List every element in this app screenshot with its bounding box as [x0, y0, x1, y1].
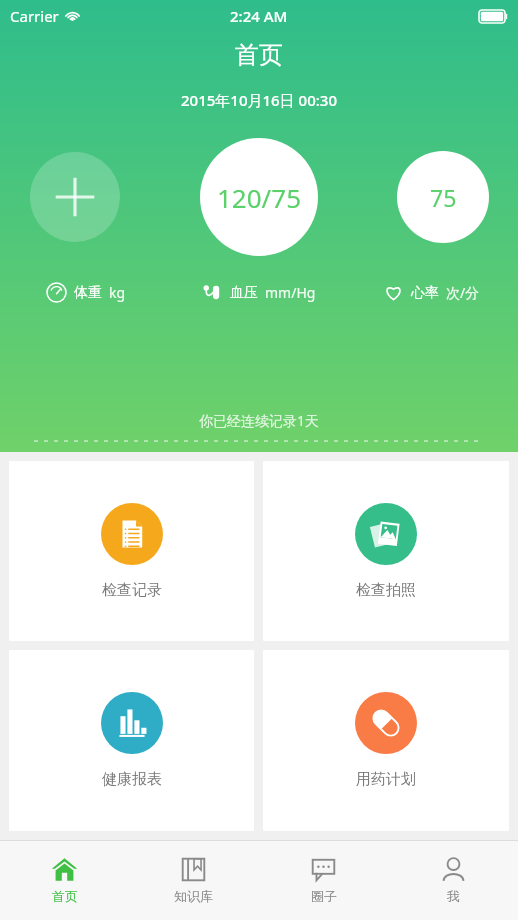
staticText: 知识库: [174, 888, 213, 904]
staticText: 圈子: [311, 888, 337, 904]
button[interactable]: 知识库: [129, 840, 258, 920]
staticText: 2015年10月16日 00:30: [0, 90, 518, 110]
staticText: Carrier: [10, 6, 59, 26]
button[interactable]: 血压: [172, 275, 345, 309]
button[interactable]: 我: [388, 840, 518, 920]
staticText: 120/75: [217, 180, 302, 215]
button[interactable]: 心率: [345, 275, 518, 309]
button[interactable]: 体重: [0, 275, 172, 309]
button[interactable]: 检查拍照: [263, 461, 509, 641]
staticText: 次/分: [446, 283, 480, 302]
staticText: 你已经连续记录1天: [0, 411, 518, 430]
staticText: 我: [447, 888, 460, 904]
staticText: 健康报表: [102, 770, 162, 789]
staticText: 检查记录: [102, 581, 162, 600]
staticText: 血压: [230, 284, 258, 302]
button[interactable]: 圈子: [258, 840, 388, 920]
button[interactable]: 添加体重: [30, 152, 120, 242]
button[interactable]: 用药计划: [263, 650, 509, 831]
button[interactable]: 首页: [0, 840, 129, 920]
button[interactable]: 75: [397, 151, 489, 243]
staticText: 体重: [74, 284, 102, 302]
staticText: 首页: [52, 888, 78, 904]
button[interactable]: 健康报表: [9, 650, 254, 831]
staticText: 首页: [0, 40, 518, 70]
staticText: mm/Hg: [265, 283, 316, 302]
staticText: 检查拍照: [356, 581, 416, 600]
button[interactable]: 120/75: [200, 138, 318, 256]
button[interactable]: 检查记录: [9, 461, 254, 641]
staticText: 75: [430, 182, 457, 213]
staticText: 心率: [411, 284, 439, 302]
staticText: 2:24 AM: [230, 6, 288, 26]
staticText: kg: [109, 283, 126, 302]
staticText: 用药计划: [356, 770, 416, 789]
